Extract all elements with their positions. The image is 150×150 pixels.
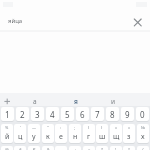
staticText: «: [115, 125, 118, 130]
button[interactable]: з: [123, 124, 135, 143]
staticText: (: [88, 125, 90, 130]
button[interactable]: и: [95, 93, 131, 106]
button[interactable]: 3: [31, 107, 44, 121]
staticText: №: [141, 125, 146, 130]
staticText: 8: [110, 109, 115, 120]
staticText: й: [5, 132, 10, 142]
staticText: а: [33, 97, 37, 106]
button[interactable]: у: [28, 124, 40, 143]
staticText: 7: [95, 109, 100, 120]
staticText: н: [73, 132, 78, 142]
button[interactable]: щ: [110, 124, 122, 143]
button[interactable]: 5: [61, 107, 74, 121]
button[interactable]: д: [110, 146, 122, 150]
button[interactable]: р: [69, 146, 81, 150]
staticText: 9: [125, 109, 130, 120]
button[interactable]: ш: [96, 124, 108, 143]
button[interactable]: ы: [14, 146, 26, 150]
button[interactable]: 1: [1, 107, 14, 121]
staticText: я: [74, 97, 78, 106]
staticText: ?: [128, 147, 130, 150]
button[interactable]: я: [58, 93, 94, 106]
staticText: з: [127, 132, 131, 142]
button[interactable]: о: [83, 146, 95, 150]
button[interactable]: г: [83, 124, 95, 143]
staticText: /: [142, 147, 144, 150]
staticText: у: [32, 132, 36, 142]
button[interactable]: 6: [76, 107, 89, 121]
button[interactable]: 8: [106, 107, 119, 121]
staticText: :: [60, 125, 62, 130]
button[interactable]: й: [1, 124, 13, 143]
staticText: 1: [5, 109, 10, 120]
staticText: 6: [80, 109, 85, 120]
staticText: ц: [18, 132, 23, 142]
staticText: #: [19, 147, 22, 150]
staticText: яйца: [8, 17, 23, 25]
button[interactable]: а: [42, 146, 54, 150]
staticText: е: [59, 132, 63, 142]
staticText: *: [101, 147, 104, 150]
staticText: =: [88, 147, 91, 150]
button[interactable]: 2: [16, 107, 29, 121]
button[interactable]: э: [137, 146, 149, 150]
staticText: 0: [140, 109, 145, 120]
button[interactable]: в: [28, 146, 40, 150]
button[interactable]: а: [17, 93, 53, 106]
button[interactable]: 4: [46, 107, 59, 121]
staticText: 3: [35, 109, 40, 120]
button[interactable]: ф: [1, 146, 13, 150]
button[interactable]: е: [55, 124, 67, 143]
staticText: г: [87, 132, 91, 142]
staticText: ш: [99, 132, 106, 142]
button[interactable]: [0, 10, 150, 31]
button[interactable]: 7: [91, 107, 104, 121]
staticText: 5: [65, 109, 70, 120]
button[interactable]: л: [96, 146, 108, 150]
staticText: х: [141, 132, 145, 142]
staticText: ;: [74, 125, 76, 130]
staticText: »: [128, 125, 131, 130]
staticText: ': [20, 125, 21, 130]
staticText: 2: [20, 109, 25, 120]
staticText: ): [101, 125, 103, 130]
button[interactable]: ц: [14, 124, 26, 143]
staticText: щ: [113, 132, 120, 142]
staticText: &: [47, 147, 50, 150]
staticText: 4: [50, 109, 55, 120]
button[interactable]: х: [137, 124, 149, 143]
button[interactable]: [130, 13, 146, 30]
button[interactable]: к: [42, 124, 54, 143]
staticText: !: [115, 147, 117, 150]
staticText: %: [5, 125, 9, 130]
button[interactable]: 0: [136, 107, 149, 121]
staticText: к: [46, 132, 50, 142]
staticText: —: [32, 125, 36, 130]
staticText: @: [5, 147, 9, 150]
staticText: +: [74, 147, 77, 150]
staticText: и: [111, 97, 116, 106]
staticText: ": [47, 125, 49, 130]
button[interactable]: 9: [121, 107, 134, 121]
button[interactable]: ж: [123, 146, 135, 150]
staticText: ₽: [33, 147, 36, 150]
button[interactable]: н: [69, 124, 81, 143]
